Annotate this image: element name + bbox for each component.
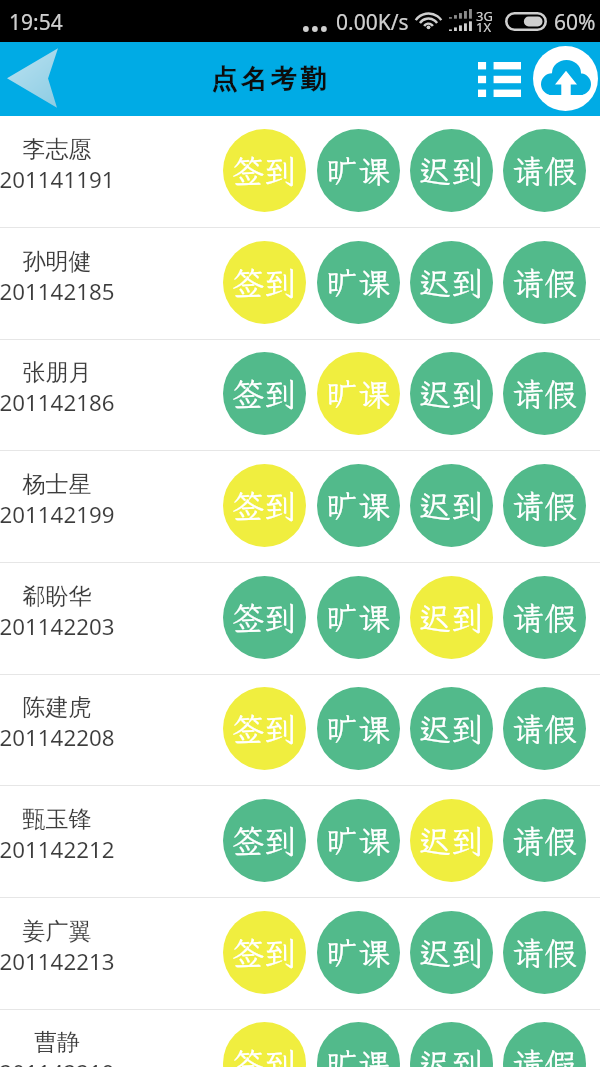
staticText: 点名考勤 xyxy=(211,63,331,96)
button[interactable]: Upload xyxy=(533,46,598,111)
staticText: 201142219 xyxy=(0,1057,137,1067)
button[interactable]: 旷课 xyxy=(317,911,400,994)
button[interactable]: 请假 xyxy=(503,1022,586,1067)
staticText: 迟到 xyxy=(419,373,484,415)
staticText: 201142208 xyxy=(0,722,137,752)
button[interactable]: 迟到 xyxy=(410,464,493,547)
staticText: 签到 xyxy=(232,820,297,862)
button[interactable]: 迟到 xyxy=(410,576,493,659)
staticText: 201142186 xyxy=(0,387,137,417)
button[interactable]: 旷课 xyxy=(317,576,400,659)
button[interactable]: 迟到 xyxy=(410,799,493,882)
staticText: 旷课 xyxy=(326,262,391,304)
staticText: 旷课 xyxy=(326,150,391,192)
button[interactable]: 签到 xyxy=(223,352,306,435)
staticText: 李志愿 xyxy=(0,135,137,164)
staticText: 201142212 xyxy=(0,834,137,864)
button[interactable]: 迟到 xyxy=(410,687,493,770)
staticText: 请假 xyxy=(512,1043,577,1067)
staticText: 201141191 xyxy=(0,164,137,194)
button[interactable]: 请假 xyxy=(503,799,586,882)
staticText: 旷课 xyxy=(326,597,391,639)
staticText: 旷课 xyxy=(326,1043,391,1067)
staticText: 签到 xyxy=(232,597,297,639)
staticText: 签到 xyxy=(232,708,297,750)
staticText: 曹静 xyxy=(0,1028,137,1057)
staticText: 旷课 xyxy=(326,373,391,415)
button[interactable]: 迟到 xyxy=(410,241,493,324)
staticText: 迟到 xyxy=(419,820,484,862)
staticText: 请假 xyxy=(512,262,577,304)
button[interactable]: 旷课 xyxy=(317,799,400,882)
staticText: 签到 xyxy=(232,485,297,527)
button[interactable]: 签到 xyxy=(223,799,306,882)
button[interactable]: 签到 xyxy=(223,1022,306,1067)
button[interactable]: Back xyxy=(0,42,80,116)
staticText: 签到 xyxy=(232,262,297,304)
staticText: 请假 xyxy=(512,932,577,974)
staticText: 201142185 xyxy=(0,276,137,306)
staticText: 签到 xyxy=(232,373,297,415)
button[interactable]: 迟到 xyxy=(410,129,493,212)
button[interactable]: 请假 xyxy=(503,352,586,435)
staticText: 杨士星 xyxy=(0,470,137,499)
button[interactable]: 签到 xyxy=(223,464,306,547)
staticText: 迟到 xyxy=(419,485,484,527)
staticText: 旷课 xyxy=(326,820,391,862)
staticText: 请假 xyxy=(512,150,577,192)
button[interactable]: 旷课 xyxy=(317,241,400,324)
staticText: 3G xyxy=(476,7,493,25)
staticText: 迟到 xyxy=(419,708,484,750)
button[interactable]: 请假 xyxy=(503,464,586,547)
button[interactable]: 签到 xyxy=(223,241,306,324)
staticText: 旷课 xyxy=(326,708,391,750)
staticText: 迟到 xyxy=(419,932,484,974)
button[interactable]: 请假 xyxy=(503,129,586,212)
staticText: 陈建虎 xyxy=(0,693,137,722)
staticText: 签到 xyxy=(232,150,297,192)
staticText: 甄玉锋 xyxy=(0,805,137,834)
staticText: 迟到 xyxy=(419,150,484,192)
staticText: 迟到 xyxy=(419,262,484,304)
button[interactable]: 迟到 xyxy=(410,1022,493,1067)
button[interactable]: 签到 xyxy=(223,687,306,770)
staticText: 郗盼华 xyxy=(0,582,137,611)
staticText: 1X xyxy=(476,18,492,36)
button[interactable]: 请假 xyxy=(503,687,586,770)
button[interactable]: 旷课 xyxy=(317,1022,400,1067)
button[interactable]: 迟到 xyxy=(410,352,493,435)
staticText: 签到 xyxy=(232,1043,297,1067)
staticText: 孙明健 xyxy=(0,247,137,276)
button[interactable]: 旷课 xyxy=(317,129,400,212)
button[interactable]: 旷课 xyxy=(317,687,400,770)
staticText: 迟到 xyxy=(419,1043,484,1067)
button[interactable]: 签到 xyxy=(223,911,306,994)
staticText: 请假 xyxy=(512,820,577,862)
button[interactable]: List view xyxy=(466,42,532,116)
button[interactable]: 签到 xyxy=(223,576,306,659)
button[interactable]: 请假 xyxy=(503,576,586,659)
staticText: 请假 xyxy=(512,373,577,415)
button[interactable]: 请假 xyxy=(503,911,586,994)
button[interactable]: 旷课 xyxy=(317,352,400,435)
staticText: 姜广翼 xyxy=(0,917,137,946)
staticText: 201142199 xyxy=(0,499,137,529)
staticText: 0.00K/s xyxy=(336,8,409,37)
button[interactable]: 签到 xyxy=(223,129,306,212)
staticText: 旷课 xyxy=(326,485,391,527)
button[interactable]: 迟到 xyxy=(410,911,493,994)
staticText: 请假 xyxy=(512,708,577,750)
staticText: 请假 xyxy=(512,485,577,527)
staticText: 旷课 xyxy=(326,932,391,974)
staticText: 请假 xyxy=(512,597,577,639)
button[interactable]: 请假 xyxy=(503,241,586,324)
staticText: 迟到 xyxy=(419,597,484,639)
staticText: 60% xyxy=(554,8,596,37)
staticText: 201142213 xyxy=(0,946,137,976)
staticText: 19:54 xyxy=(9,8,63,37)
staticText: 201142203 xyxy=(0,611,137,641)
staticText: 张朋月 xyxy=(0,358,137,387)
button[interactable]: 旷课 xyxy=(317,464,400,547)
staticText: 签到 xyxy=(232,932,297,974)
